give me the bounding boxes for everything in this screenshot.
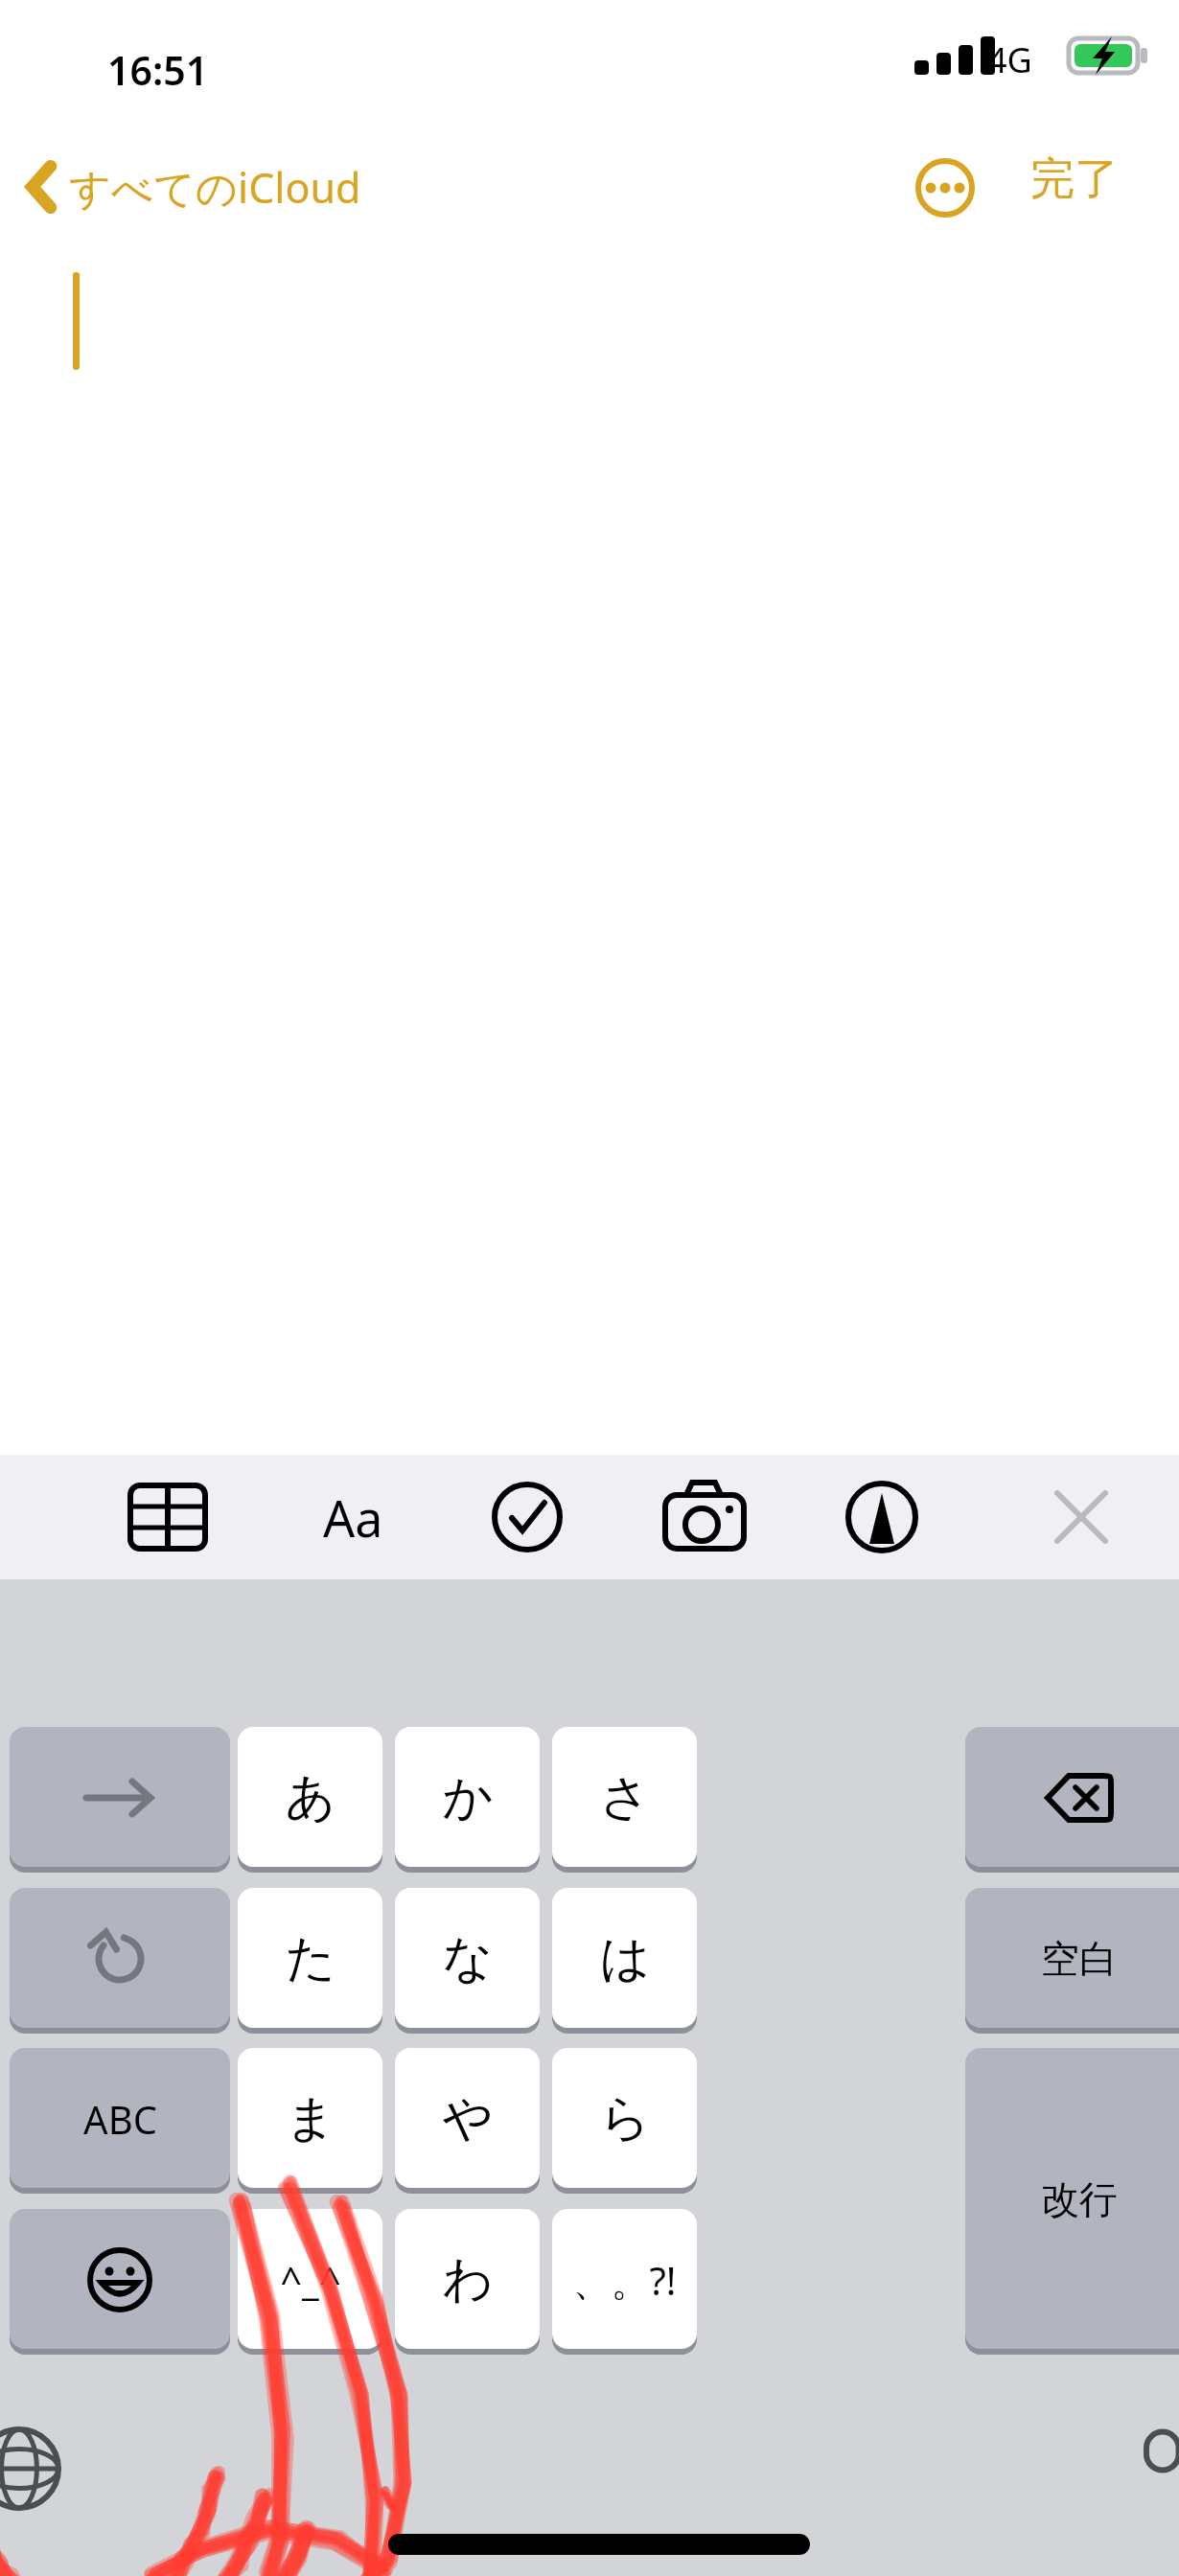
button[interactable]: Checklist bbox=[479, 1479, 575, 1555]
button[interactable]: 、。?! bbox=[552, 2209, 697, 2351]
button[interactable]: な bbox=[395, 1888, 540, 2030]
button[interactable]: Aa bbox=[300, 1474, 405, 1560]
button[interactable]: ABC bbox=[10, 2048, 230, 2190]
staticText: 4G bbox=[987, 36, 1032, 83]
staticText: すべてのiCloud bbox=[69, 159, 361, 216]
staticText: ら bbox=[599, 2087, 651, 2150]
button[interactable]: Camera bbox=[657, 1479, 752, 1555]
staticText: 16:51 bbox=[107, 43, 209, 97]
button[interactable]: Next candidate bbox=[10, 1727, 230, 1869]
button[interactable]: 改行 bbox=[965, 2048, 1179, 2351]
staticText: ま bbox=[285, 2087, 336, 2150]
staticText: 空白 bbox=[1041, 1935, 1118, 1983]
staticText: た bbox=[285, 1927, 336, 1990]
button[interactable]: さ bbox=[552, 1727, 697, 1869]
button[interactable]: Markup bbox=[834, 1479, 930, 1555]
button[interactable]: ま bbox=[238, 2048, 382, 2190]
button[interactable]: わ bbox=[395, 2209, 540, 2351]
button[interactable]: た bbox=[238, 1888, 382, 2030]
button[interactable]: Change keyboard bbox=[0, 2425, 63, 2513]
button[interactable]: Emoji bbox=[10, 2209, 230, 2351]
staticText: は bbox=[599, 1927, 651, 1990]
staticText: Aa bbox=[323, 1483, 383, 1552]
staticText: や bbox=[442, 2087, 494, 2150]
staticText: な bbox=[442, 1927, 494, 1990]
staticText: あ bbox=[285, 1766, 336, 1829]
staticText: 改行 bbox=[1041, 2175, 1118, 2223]
button[interactable]: や bbox=[395, 2048, 540, 2190]
staticText: ABC bbox=[83, 2093, 157, 2145]
staticText: 完了 bbox=[1030, 151, 1119, 207]
button[interactable]: は bbox=[552, 1888, 697, 2030]
button[interactable]: Undo bbox=[10, 1888, 230, 2030]
staticText: わ bbox=[442, 2248, 494, 2311]
button[interactable]: Close keyboard bbox=[1033, 1479, 1129, 1555]
staticText: さ bbox=[599, 1766, 651, 1829]
button[interactable]: 空白 bbox=[965, 1888, 1179, 2030]
button[interactable]: Backspace bbox=[965, 1727, 1179, 1869]
staticText: ^_^ bbox=[280, 2254, 341, 2306]
button[interactable]: ら bbox=[552, 2048, 697, 2190]
staticText: 、。?! bbox=[572, 2254, 677, 2307]
button[interactable]: ^_^ bbox=[238, 2209, 382, 2351]
button[interactable]: あ bbox=[238, 1727, 382, 1869]
button[interactable]: More options bbox=[915, 158, 975, 218]
button[interactable] bbox=[120, 1479, 216, 1555]
button[interactable]: か bbox=[395, 1727, 540, 1869]
button[interactable]: 完了 bbox=[1030, 151, 1119, 207]
button[interactable]: Dictation bbox=[1143, 2423, 1179, 2499]
staticText: か bbox=[442, 1766, 494, 1829]
button[interactable]: すべてのiCloud bbox=[23, 153, 361, 220]
